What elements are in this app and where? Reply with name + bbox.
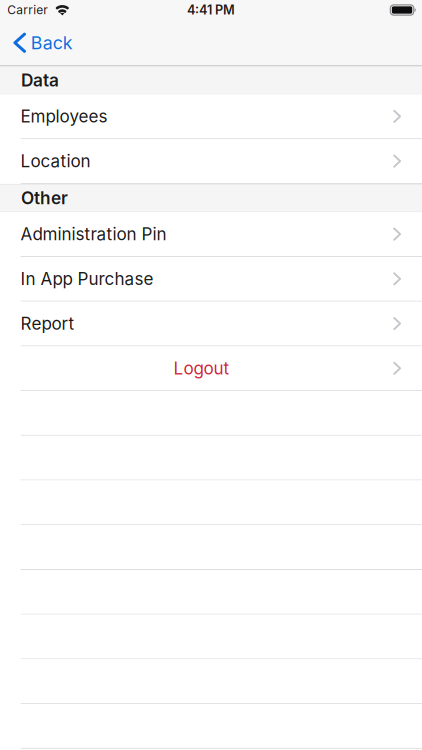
staticText: Data: [21, 70, 59, 91]
staticText: Carrier: [7, 3, 48, 17]
button[interactable]: Logout: [0, 346, 422, 391]
staticText: In App Purchase: [21, 268, 154, 289]
staticText: Administration Pin: [21, 224, 167, 244]
button[interactable]: Location: [0, 139, 422, 184]
staticText: Other: [21, 188, 68, 208]
button[interactable]: Administration Pin: [0, 212, 422, 257]
staticText: Report: [21, 313, 75, 334]
button[interactable]: In App Purchase: [0, 257, 422, 302]
button[interactable]: Employees: [0, 94, 422, 139]
button[interactable]: Back: [0, 20, 83, 65]
staticText: Employees: [21, 106, 108, 127]
button[interactable]: Report: [0, 302, 422, 346]
staticText: Logout: [174, 358, 230, 379]
staticText: Back: [31, 32, 73, 53]
staticText: Location: [21, 151, 91, 171]
staticText: 4:41 PM: [187, 2, 235, 18]
